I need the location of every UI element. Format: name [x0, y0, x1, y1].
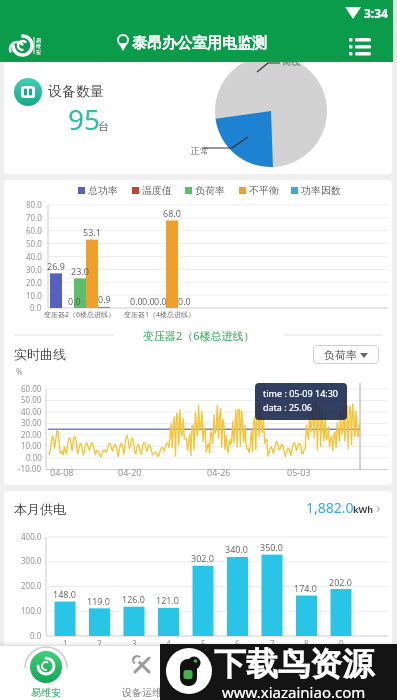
staticText: 350.0: [260, 541, 284, 553]
staticText: 200.0: [21, 580, 42, 591]
staticText: 400.0: [21, 531, 42, 542]
staticText: 正常: [191, 145, 209, 156]
staticText: 23.0: [71, 265, 89, 277]
staticText: 70.0: [26, 212, 42, 223]
staticText: 0.0: [30, 630, 42, 641]
staticText: 100.0: [21, 605, 42, 616]
staticText: 340.0: [225, 543, 249, 555]
staticText: %: [16, 366, 23, 377]
staticText: 0.0: [154, 295, 167, 307]
staticText: 易: [36, 37, 41, 43]
staticText: 30.00: [21, 417, 42, 428]
staticText: -10.00: [18, 463, 42, 474]
staticText: time : 05-09 14:30: [263, 387, 338, 399]
staticText: 3: [132, 638, 137, 649]
staticText: 温度值: [142, 184, 172, 197]
staticText: 1,882.0: [306, 498, 354, 517]
staticText: 5: [201, 638, 206, 649]
staticText: 6: [235, 638, 240, 649]
staticText: 易维安: [31, 686, 61, 699]
button[interactable]: [210, 645, 270, 700]
staticText: 设备数量: [48, 83, 104, 101]
staticText: 119.0: [87, 595, 111, 607]
staticText: 2: [97, 638, 102, 649]
staticText: 总功率: [88, 184, 118, 197]
staticText: 0.0: [68, 295, 81, 307]
staticText: 负荷率: [324, 348, 357, 362]
staticText: 安: [36, 49, 41, 55]
staticText: 7: [270, 638, 275, 649]
staticText: 8: [304, 638, 309, 649]
staticText: 4: [166, 638, 171, 649]
staticText: 1: [63, 638, 68, 649]
staticText: data : 25.06: [263, 401, 312, 413]
staticText: 设备运维: [122, 686, 162, 699]
staticText: www.xiazainiao.com: [222, 682, 366, 700]
staticText: 95: [68, 100, 101, 138]
staticText: 泰昂办公室用电监测: [132, 34, 267, 53]
staticText: 80.0: [26, 199, 42, 210]
staticText: 04-08: [50, 466, 74, 478]
staticText: 20.0: [26, 277, 42, 288]
staticText: 202.0: [329, 576, 353, 588]
staticText: 126.0: [122, 593, 146, 605]
button[interactable]: 设备运维: [112, 645, 172, 700]
staticText: 0.00: [26, 452, 42, 463]
staticText: 68.0: [163, 207, 181, 219]
button[interactable]: 变压器2（6楼总进线）: [114, 326, 284, 344]
staticText: 变压器2（6楼总进线）: [143, 328, 255, 343]
staticText: 174.0: [294, 582, 318, 594]
staticText: 变压器2（6楼总进线）: [44, 310, 116, 320]
button[interactable]: 设备数量: [4, 62, 392, 174]
staticText: 维: [36, 43, 41, 49]
staticText: 302.0: [191, 552, 215, 564]
staticText: 148.0: [53, 588, 77, 600]
staticText: 10.0: [26, 290, 42, 301]
staticText: 60.0: [26, 225, 42, 236]
staticText: 04-20: [118, 466, 142, 478]
staticText: 0.0: [30, 302, 42, 313]
button[interactable]: 负荷率: [313, 345, 379, 364]
staticText: 本月供电: [14, 501, 66, 517]
staticText: 变压器1（4楼总进线）: [124, 310, 196, 320]
button[interactable]: [320, 645, 380, 700]
staticText: 60.00: [21, 383, 42, 394]
staticText: 0.0: [142, 295, 155, 307]
button[interactable]: [110, 28, 280, 58]
staticText: 不平衡: [249, 184, 279, 197]
staticText: 9: [339, 638, 344, 649]
staticText: 3:34: [364, 5, 388, 21]
staticText: 04-26: [207, 466, 231, 478]
staticText: 0.0: [178, 295, 191, 307]
staticText: 50.00: [21, 394, 42, 405]
staticText: 30.0: [26, 264, 42, 275]
staticText: ›: [376, 497, 381, 517]
staticText: kWh: [353, 503, 374, 515]
staticText: 负荷率: [195, 184, 225, 197]
button[interactable]: [342, 30, 378, 58]
staticText: 40.00: [21, 406, 42, 417]
staticText: 26.9: [47, 260, 65, 272]
staticText: 0.9: [98, 293, 111, 305]
button[interactable]: 易维安: [16, 645, 76, 700]
staticText: 05-03: [287, 466, 311, 478]
staticText: 40.0: [26, 251, 42, 262]
staticText: 300.0: [21, 555, 42, 566]
staticText: 实时曲线: [14, 346, 66, 362]
staticText: 0.0: [130, 295, 143, 307]
staticText: 下载鸟资源: [214, 644, 374, 684]
staticText: 121.0: [156, 594, 180, 606]
staticText: 50.0: [26, 238, 42, 249]
staticText: 10.00: [21, 440, 42, 451]
staticText: 20.00: [21, 429, 42, 440]
staticText: 功率因数: [301, 184, 341, 197]
staticText: 台: [98, 119, 109, 133]
staticText: 53.1: [83, 226, 101, 238]
staticText: 离线: [282, 62, 300, 67]
